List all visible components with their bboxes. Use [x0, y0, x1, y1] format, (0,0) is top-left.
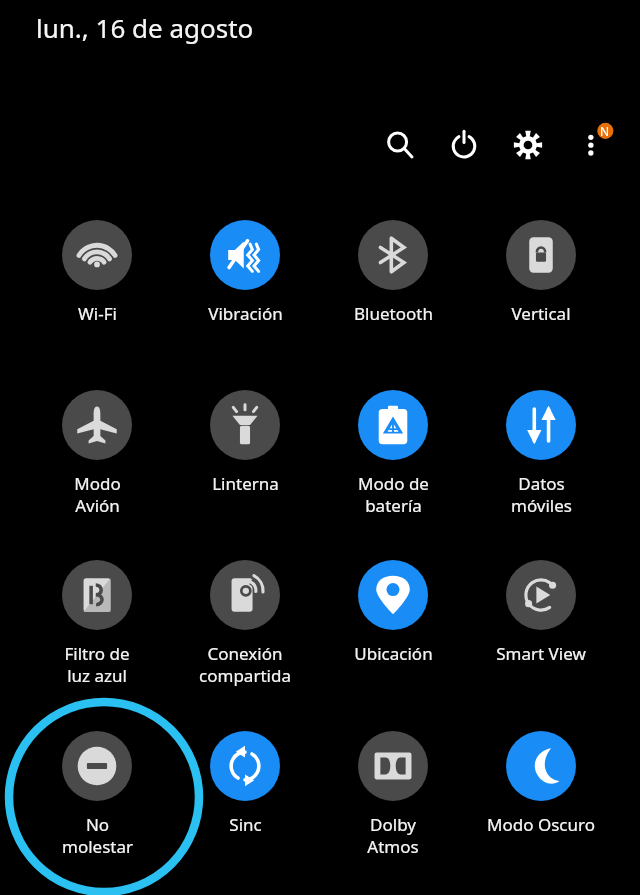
other: Dolby Atmos [358, 731, 428, 801]
button[interactable]: Dolby Atmos [319, 731, 467, 858]
staticText: Ubicación [354, 642, 433, 665]
button[interactable]: Vertical [467, 220, 615, 325]
staticText: Vertical [511, 302, 571, 325]
staticText: Modo Avión [74, 472, 121, 517]
staticText: Modo de batería [358, 472, 429, 517]
button[interactable]: Vibración [171, 220, 319, 325]
other: Vibración [210, 220, 280, 290]
button[interactable]: Ajustes [509, 126, 547, 164]
staticText: Wi-Fi [78, 302, 117, 325]
staticText: Linterna [212, 472, 279, 495]
button[interactable]: Bluetooth [319, 220, 467, 325]
button[interactable]: Wi-Fi [23, 220, 171, 325]
other: Modo Avión [62, 390, 132, 460]
other: No molestar [62, 731, 132, 801]
button[interactable]: Modo Oscuro [467, 731, 615, 836]
other: Sinc [210, 731, 280, 801]
button[interactable]: Más opciones [575, 118, 621, 164]
staticText: Dolby Atmos [367, 813, 419, 858]
button[interactable]: No molestar [23, 731, 171, 858]
button[interactable]: Filtro de luz azul [23, 560, 171, 687]
button[interactable]: Datos móviles [467, 390, 615, 517]
other: Conexión compartida [210, 560, 280, 630]
button[interactable]: Sinc [171, 731, 319, 836]
staticText: Datos móviles [511, 472, 572, 517]
staticText: Filtro de luz azul [64, 642, 130, 687]
other: Bluetooth [358, 220, 428, 290]
staticText: Sinc [229, 813, 262, 836]
button[interactable]: Buscar [381, 126, 419, 164]
other: Smart View [506, 560, 576, 630]
button[interactable]: Modo Avión [23, 390, 171, 517]
button[interactable]: Conexión compartida [171, 560, 319, 687]
staticText: No molestar [62, 813, 133, 858]
other: Filtro de luz azul [62, 560, 132, 630]
other: Linterna [210, 390, 280, 460]
staticText: Smart View [496, 642, 586, 665]
other: Ubicación [358, 560, 428, 630]
other: Vertical [506, 220, 576, 290]
staticText: Bluetooth [354, 302, 433, 325]
staticText: lun., 16 de agosto [36, 10, 254, 45]
staticText: Conexión compartida [199, 642, 291, 687]
button[interactable]: Apagar [445, 126, 483, 164]
other: Modo Oscuro [506, 731, 576, 801]
other: Wi-Fi [62, 220, 132, 290]
staticText: Modo Oscuro [487, 813, 595, 836]
button[interactable]: Modo de batería [319, 390, 467, 517]
button[interactable]: Ubicación [319, 560, 467, 665]
button[interactable]: Linterna [171, 390, 319, 495]
button[interactable]: Smart View [467, 560, 615, 665]
staticText: Vibración [208, 302, 283, 325]
other: Datos móviles [506, 390, 576, 460]
staticText: N [600, 123, 610, 139]
other: Modo de batería [358, 390, 428, 460]
